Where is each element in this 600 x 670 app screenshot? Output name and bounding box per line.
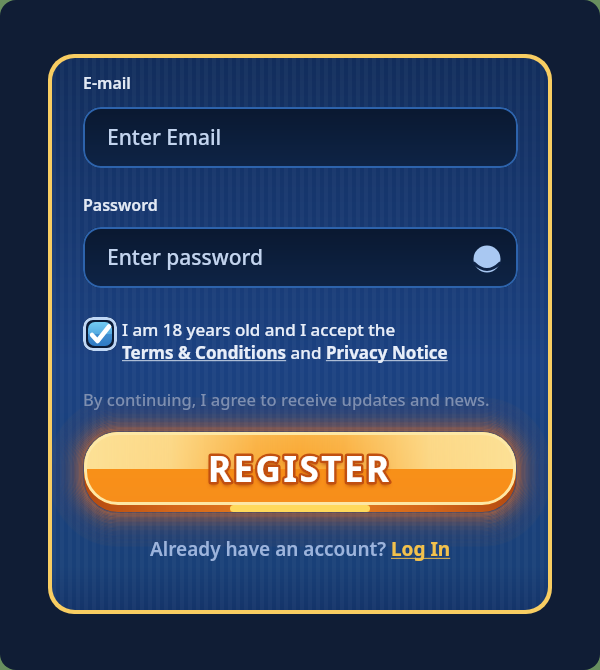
staticText: REGISTER — [208, 445, 392, 493]
button[interactable] — [83, 317, 117, 351]
button[interactable]: Enter password — [83, 227, 518, 288]
staticText: By continuing, I agree to receive update… — [83, 388, 490, 410]
staticText: E-mail — [83, 72, 131, 94]
button[interactable]: REGISTER — [84, 432, 516, 514]
staticText: Enter password — [107, 243, 264, 272]
button[interactable]: Enter Email — [83, 107, 518, 168]
staticText: REGISTER — [208, 445, 392, 493]
staticText: I am 18 years old and I accept the — [122, 318, 396, 341]
staticText: Already have an account? — [150, 536, 391, 562]
button[interactable]: Log In — [391, 536, 451, 562]
button[interactable]: Terms & Conditions and Privacy Notice — [122, 341, 448, 364]
staticText: Enter Email — [107, 123, 222, 152]
staticText: Password — [83, 194, 158, 216]
